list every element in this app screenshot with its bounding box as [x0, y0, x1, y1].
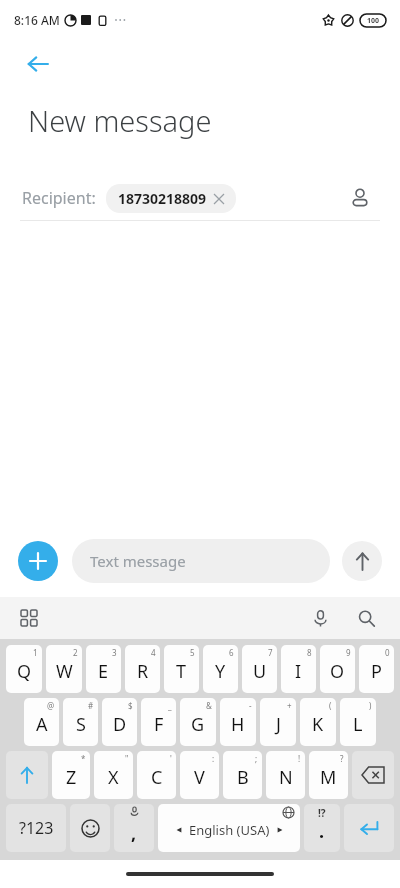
staticText: 2 — [73, 647, 78, 658]
staticText: N — [279, 765, 293, 790]
button[interactable]: Send — [342, 541, 382, 581]
staticText: Recipient: — [22, 187, 96, 209]
staticText: New message — [28, 101, 212, 140]
staticText: L — [353, 712, 363, 737]
staticText: Z — [66, 765, 77, 790]
staticText: 9 — [346, 647, 351, 658]
button[interactable]: 7 — [242, 645, 277, 693]
staticText: $ — [128, 700, 133, 711]
button[interactable]: _ — [141, 698, 176, 746]
staticText: 6 — [229, 647, 234, 658]
staticText: V — [194, 765, 205, 790]
button[interactable]: Text message — [72, 539, 330, 583]
button[interactable]: ) — [340, 698, 376, 746]
staticText: 5 — [190, 647, 195, 658]
button[interactable]: Backspace — [352, 751, 394, 799]
staticText: " — [125, 753, 129, 764]
button[interactable]: - — [220, 698, 256, 746]
staticText: 7 — [268, 647, 273, 658]
staticText: @ — [47, 700, 55, 711]
staticText: - — [249, 700, 252, 711]
staticText: G — [191, 712, 205, 737]
staticText: , — [131, 821, 137, 846]
staticText: & — [206, 700, 212, 711]
staticText: 1 — [33, 647, 38, 658]
button[interactable]: $ — [102, 698, 137, 746]
button[interactable]: Comma and voice — [114, 804, 154, 852]
button[interactable]: 9 — [320, 645, 355, 693]
button[interactable]: : — [180, 751, 219, 799]
staticText: ( — [329, 700, 332, 711]
button[interactable]: ? — [309, 751, 348, 799]
button[interactable]: ' — [137, 751, 176, 799]
button[interactable]: @ — [24, 698, 59, 746]
staticText: . — [319, 819, 325, 844]
staticText: 8:16 AM — [14, 12, 60, 28]
button[interactable]: Contacts — [342, 180, 378, 216]
staticText: H — [231, 712, 245, 737]
button[interactable]: # — [63, 698, 98, 746]
button[interactable]: 5 — [164, 645, 199, 693]
staticText: # — [88, 700, 94, 711]
staticText: ?123 — [19, 817, 54, 839]
staticText: * — [81, 753, 86, 764]
staticText: 0 — [385, 647, 390, 658]
button[interactable]: " — [94, 751, 133, 799]
staticText: 4 — [151, 647, 156, 658]
button[interactable]: & — [180, 698, 216, 746]
staticText: ) — [369, 700, 372, 711]
staticText: W — [56, 659, 73, 684]
staticText: + — [287, 700, 292, 711]
button[interactable]: English (USA) — [158, 804, 300, 852]
staticText: O — [330, 659, 345, 684]
staticText: 18730218809 — [118, 189, 207, 208]
staticText: Q — [17, 659, 32, 684]
staticText: English (USA) — [189, 821, 270, 839]
staticText: I — [295, 659, 302, 684]
button[interactable]: Enter — [344, 804, 394, 852]
button[interactable]: * — [52, 751, 90, 799]
staticText: D — [113, 712, 127, 737]
button[interactable]: Keyboard options — [14, 603, 44, 633]
button[interactable]: 4 — [125, 645, 160, 693]
button[interactable]: Search — [350, 602, 382, 634]
staticText: R — [137, 659, 149, 684]
staticText: 8 — [307, 647, 312, 658]
button[interactable]: 1 — [6, 645, 42, 693]
button[interactable]: Period — [304, 804, 340, 852]
staticText: !? — [318, 806, 326, 820]
button[interactable]: ?123 — [6, 804, 66, 852]
button[interactable]: ; — [223, 751, 262, 799]
staticText: : — [212, 753, 215, 764]
button[interactable]: 6 — [203, 645, 238, 693]
staticText: J — [276, 712, 281, 737]
button[interactable]: Add attachment — [18, 541, 58, 581]
button[interactable]: Voice input — [304, 602, 336, 634]
button[interactable]: 0 — [359, 645, 394, 693]
staticText: ? — [340, 753, 344, 764]
button[interactable]: Shift — [6, 751, 48, 799]
button[interactable]: Back — [18, 44, 58, 84]
button[interactable]: 2 — [46, 645, 82, 693]
staticText: C — [151, 765, 163, 790]
staticText: T — [176, 659, 187, 684]
staticText: K — [312, 712, 324, 737]
button[interactable]: Emoji — [70, 804, 110, 852]
button[interactable]: ( — [300, 698, 336, 746]
button[interactable]: 8 — [281, 645, 316, 693]
staticText: Y — [215, 659, 226, 684]
staticText: E — [98, 659, 109, 684]
button[interactable]: + — [260, 698, 296, 746]
staticText: 100 — [367, 16, 380, 26]
button[interactable]: 3 — [86, 645, 121, 693]
staticText: 3 — [112, 647, 117, 658]
staticText: A — [36, 712, 48, 737]
staticText: M — [320, 765, 337, 790]
staticText: ! — [298, 753, 301, 764]
button[interactable]: ! — [266, 751, 305, 799]
button[interactable]: 18730218809 — [106, 184, 236, 213]
staticText: Text message — [90, 551, 186, 571]
staticText: _ — [168, 700, 172, 711]
staticText: X — [108, 765, 119, 790]
staticText: ; — [255, 753, 258, 764]
